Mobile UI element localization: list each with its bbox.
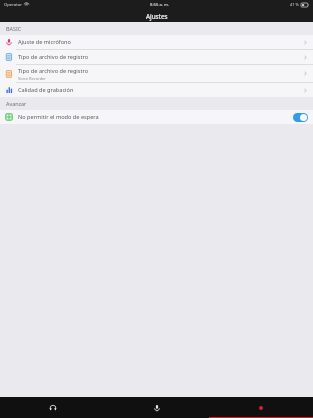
- staticText: No permitir el modo de espera: [18, 113, 293, 121]
- button[interactable]: Calidad de grabación: [0, 83, 313, 97]
- staticText: Calidad de grabación: [18, 86, 74, 94]
- button[interactable]: Tipo de archivo de registro: [0, 65, 313, 82]
- staticText: Operator: [4, 2, 22, 8]
- button[interactable]: Grabar: [105, 397, 209, 418]
- staticText: BASIC: [6, 25, 22, 32]
- staticText: Voice Recorder: [18, 76, 47, 81]
- staticText: 8:56 a. m.: [150, 2, 169, 8]
- staticText: Ajuste de micrófono: [18, 38, 71, 46]
- staticText: Avanzar: [6, 100, 27, 107]
- staticText: Tipo de archivo de registro: [18, 67, 89, 75]
- staticText: Ajustes: [146, 12, 168, 20]
- button[interactable]: Reproducir: [0, 397, 105, 418]
- button[interactable]: No permitir el modo de espera: [0, 110, 313, 124]
- other: No permitir el modo de espera: [293, 113, 308, 122]
- button[interactable]: Ajuste de micrófono: [0, 35, 313, 49]
- button[interactable]: Ajustes: [209, 397, 313, 418]
- button[interactable]: Tipo de archivo de registro: [0, 50, 313, 64]
- staticText: 41 %: [290, 2, 299, 7]
- staticText: Tipo de archivo de registro: [18, 53, 89, 61]
